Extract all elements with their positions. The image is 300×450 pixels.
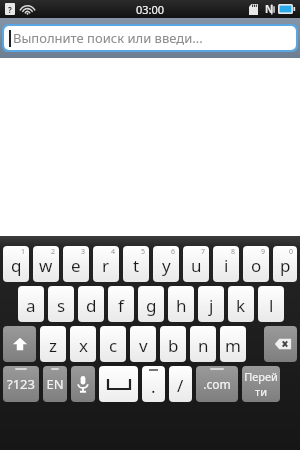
- button[interactable]: d: [78, 286, 104, 322]
- button[interactable]: k: [228, 286, 254, 322]
- staticText: s: [57, 294, 66, 317]
- staticText: y: [162, 254, 171, 277]
- button[interactable]: .com: [196, 366, 238, 402]
- staticText: ?: [8, 4, 12, 15]
- staticText: EN: [46, 375, 64, 393]
- staticText: u: [191, 254, 202, 277]
- staticText: o: [251, 254, 262, 277]
- button[interactable]: l: [258, 286, 284, 322]
- button[interactable]: g: [138, 286, 164, 322]
- staticText: 3: [81, 247, 86, 257]
- button[interactable]: j: [198, 286, 224, 322]
- staticText: f: [118, 294, 124, 317]
- button[interactable]: h: [168, 286, 194, 322]
- staticText: l: [269, 294, 274, 317]
- staticText: x: [79, 334, 88, 357]
- button[interactable]: 8: [213, 246, 239, 282]
- staticText: a: [26, 294, 36, 317]
- staticText: 5: [141, 247, 146, 257]
- staticText: t: [133, 254, 140, 277]
- staticText: n: [198, 334, 209, 357]
- staticText: 03:00: [136, 2, 165, 17]
- staticText: 2: [51, 247, 56, 257]
- staticText: 8: [231, 247, 236, 257]
- staticText: r: [102, 254, 110, 277]
- button[interactable]: f: [108, 286, 134, 322]
- staticText: c: [109, 334, 118, 357]
- staticText: i: [224, 254, 229, 277]
- staticText: Перей ти: [244, 369, 278, 399]
- staticText: v: [139, 334, 148, 357]
- button[interactable]: 5: [123, 246, 149, 282]
- staticText: g: [146, 294, 157, 317]
- staticText: h: [176, 294, 187, 317]
- staticText: w: [39, 254, 53, 277]
- staticText: z: [49, 334, 57, 357]
- button[interactable]: 4: [93, 246, 119, 282]
- button[interactable]: n: [190, 326, 216, 362]
- staticText: 1: [21, 247, 26, 257]
- staticText: .: [151, 375, 156, 398]
- staticText: 0: [289, 247, 294, 257]
- staticText: N: [265, 2, 274, 16]
- button[interactable]: Backspace: [264, 326, 297, 362]
- staticText: m: [225, 334, 241, 357]
- staticText: b: [168, 334, 179, 357]
- staticText: d: [86, 294, 97, 317]
- staticText: 9: [261, 247, 266, 257]
- staticText: 6: [171, 247, 176, 257]
- staticText: ?123: [7, 375, 35, 393]
- staticText: e: [71, 254, 81, 277]
- staticText: /: [177, 374, 184, 397]
- button[interactable]: 6: [153, 246, 179, 282]
- staticText: k: [236, 294, 246, 317]
- staticText: j: [209, 294, 214, 317]
- button[interactable]: s: [48, 286, 74, 322]
- button[interactable]: EN: [43, 366, 67, 402]
- button[interactable]: 9: [243, 246, 269, 282]
- staticText: .com: [203, 376, 231, 392]
- button[interactable]: .: [142, 366, 165, 402]
- button[interactable]: 3: [63, 246, 89, 282]
- button[interactable]: x: [70, 326, 96, 362]
- staticText: Выполните поиск или введи...: [13, 29, 203, 47]
- button[interactable]: 2: [33, 246, 59, 282]
- staticText: q: [11, 254, 22, 277]
- button[interactable]: ?123: [3, 366, 39, 402]
- button[interactable]: Перей ти: [242, 366, 280, 402]
- button[interactable]: Shift: [3, 326, 36, 362]
- staticText: 4: [111, 247, 116, 257]
- button[interactable]: a: [18, 286, 44, 322]
- button[interactable]: /: [169, 366, 192, 402]
- button[interactable]: c: [100, 326, 126, 362]
- button[interactable]: 7: [183, 246, 209, 282]
- button[interactable]: z: [40, 326, 66, 362]
- button[interactable]: v: [130, 326, 156, 362]
- button[interactable]: Space: [99, 366, 138, 402]
- staticText: 7: [201, 247, 206, 257]
- button[interactable]: 1: [3, 246, 29, 282]
- button[interactable]: m: [220, 326, 246, 362]
- button[interactable]: 0: [273, 246, 297, 282]
- button[interactable]: Выполните поиск или введи...: [4, 26, 296, 50]
- button[interactable]: b: [160, 326, 186, 362]
- staticText: p: [280, 254, 291, 277]
- button[interactable]: Voice input: [71, 366, 95, 402]
